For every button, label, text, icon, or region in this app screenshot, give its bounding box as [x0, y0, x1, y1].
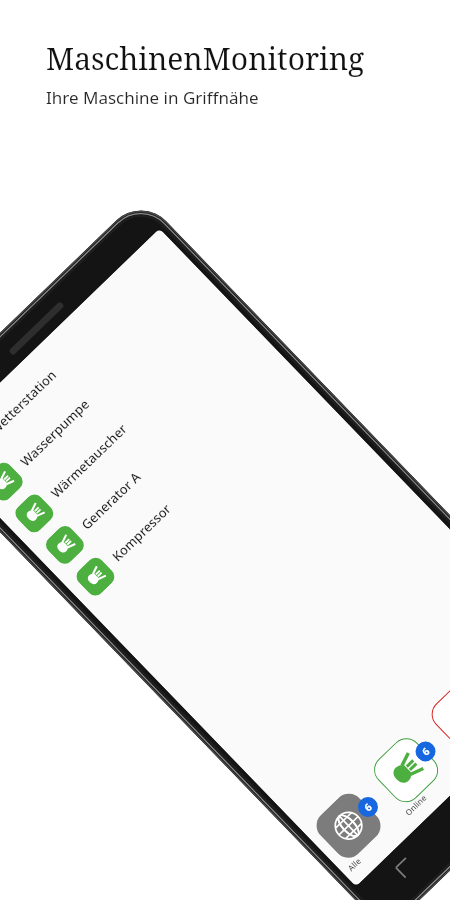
staticText: MaschinenMonitoring: [46, 38, 365, 79]
staticText: Ihre Maschine in Griffnähe: [46, 86, 259, 109]
staticText: Wasserpumpe: [16, 395, 93, 470]
staticText: Kompressor: [108, 499, 175, 565]
button[interactable]: 6: [368, 722, 450, 816]
button[interactable]: 0: [425, 667, 450, 760]
button[interactable]: Wetterstation: [0, 247, 183, 473]
button[interactable]: Wasserpumpe: [0, 278, 213, 504]
button[interactable]: Wärmetauscher: [12, 310, 244, 536]
staticText: Online: [403, 792, 429, 818]
staticText: 6: [418, 744, 432, 758]
staticText: Alle: [345, 855, 363, 873]
staticText: 6: [361, 800, 375, 814]
button[interactable]: 6: [310, 778, 404, 871]
staticText: Wärmetauscher: [47, 419, 131, 502]
button[interactable]: Kompressor: [73, 373, 305, 599]
button[interactable]: Back: [387, 849, 424, 886]
button[interactable]: Generator A: [42, 342, 275, 568]
staticText: Wetterstation: [0, 366, 60, 438]
staticText: Generator A: [77, 468, 144, 533]
